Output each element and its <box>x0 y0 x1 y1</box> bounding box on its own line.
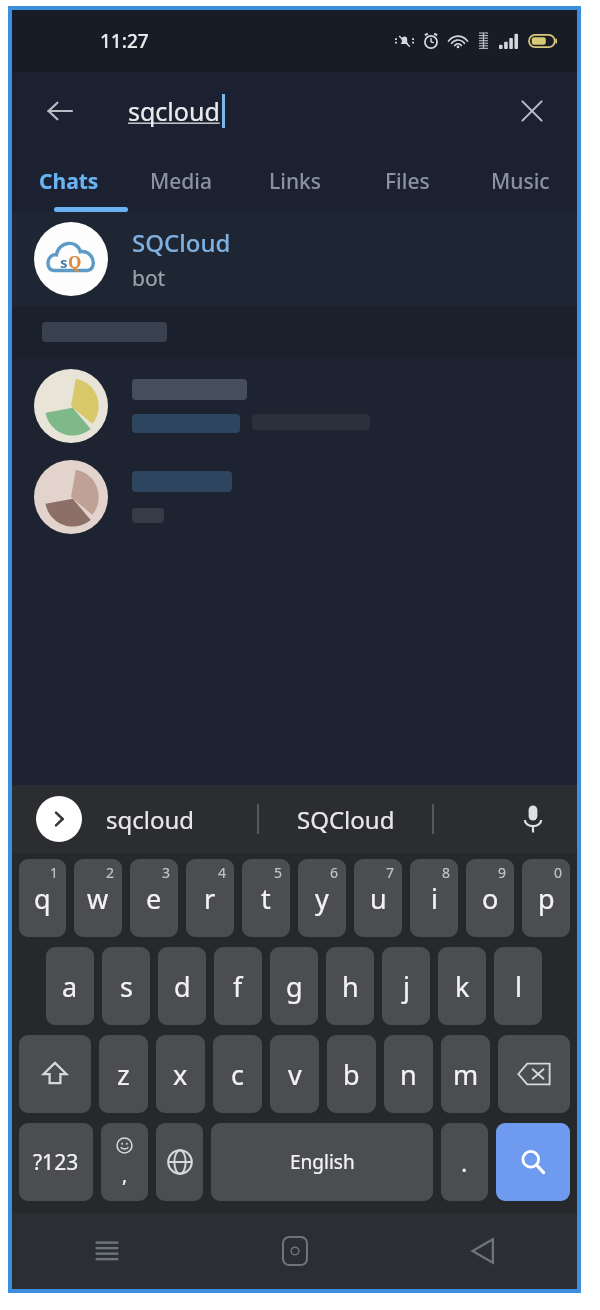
button[interactable]: b <box>327 1035 376 1113</box>
button[interactable]: t <box>242 859 290 937</box>
button[interactable]: i <box>410 859 458 937</box>
staticText: SQCloud <box>297 803 395 836</box>
staticText: , <box>122 1161 128 1188</box>
button[interactable]: l <box>494 947 542 1025</box>
staticText: n <box>400 1056 417 1093</box>
button[interactable]: j <box>382 947 430 1025</box>
button[interactable]: f <box>214 947 262 1025</box>
button[interactable]: Voice input <box>509 795 557 843</box>
staticText: 4 <box>218 863 227 882</box>
staticText: k <box>455 968 470 1005</box>
staticText: b <box>343 1056 360 1093</box>
button[interactable]: Change language <box>156 1123 203 1201</box>
staticText: Links <box>269 167 321 196</box>
staticText: s <box>60 252 68 272</box>
staticText: e <box>146 880 162 917</box>
button[interactable]: o <box>466 859 514 937</box>
staticText: 6 <box>330 863 339 882</box>
staticText: r <box>204 880 216 917</box>
staticText: 8 <box>442 863 451 882</box>
staticText: sqcloud <box>106 803 195 836</box>
staticText: m <box>453 1056 479 1093</box>
button[interactable]: English <box>211 1123 433 1201</box>
button[interactable]: Back <box>32 83 88 139</box>
staticText: l <box>515 968 522 1005</box>
button[interactable]: Music <box>464 150 577 212</box>
button[interactable]: v <box>270 1035 319 1113</box>
staticText: z <box>117 1056 130 1093</box>
button[interactable]: sqcloud <box>106 803 257 836</box>
staticText: 9 <box>498 863 507 882</box>
button[interactable]: y <box>298 859 346 937</box>
button[interactable]: s <box>102 947 150 1025</box>
button[interactable]: Recent apps <box>12 1213 201 1289</box>
button[interactable]: c <box>213 1035 262 1113</box>
staticText: 5 <box>274 863 283 882</box>
button[interactable]: Home <box>201 1213 389 1289</box>
staticText: sqcloud <box>128 94 220 128</box>
button[interactable]: Media <box>125 150 238 212</box>
button[interactable] <box>12 453 577 541</box>
button[interactable]: a <box>46 947 94 1025</box>
staticText: p <box>538 880 555 917</box>
button[interactable]: d <box>158 947 206 1025</box>
staticText: 3 <box>162 863 171 882</box>
staticText: c <box>231 1056 244 1093</box>
button[interactable]: n <box>384 1035 433 1113</box>
staticText: 1 <box>50 863 59 882</box>
button[interactable]: x <box>156 1035 205 1113</box>
button[interactable]: h <box>326 947 374 1025</box>
button[interactable]: Emoji and comma <box>101 1123 148 1201</box>
button[interactable]: p <box>522 859 570 937</box>
staticText: Q <box>68 250 82 273</box>
button[interactable]: g <box>270 947 318 1025</box>
button[interactable]: Shift <box>19 1035 91 1113</box>
staticText: Files <box>385 167 430 196</box>
staticText: Music <box>491 167 550 196</box>
button[interactable]: z <box>99 1035 148 1113</box>
staticText: y <box>315 880 329 917</box>
button[interactable]: e <box>130 859 178 937</box>
staticText: Media <box>150 167 213 196</box>
staticText: ?123 <box>33 1148 79 1177</box>
button[interactable]: Search <box>496 1123 570 1201</box>
button[interactable]: Chats <box>12 150 125 212</box>
button[interactable]: Expand suggestions <box>36 796 82 842</box>
staticText: bot <box>132 264 166 293</box>
button[interactable]: ?123 <box>19 1123 93 1201</box>
staticText: f <box>233 968 243 1005</box>
button[interactable]: q <box>19 859 66 937</box>
button[interactable]: u <box>354 859 402 937</box>
staticText: t <box>261 880 271 917</box>
staticText: g <box>286 968 303 1005</box>
button[interactable]: Clear search <box>505 84 559 138</box>
button[interactable] <box>12 358 577 453</box>
staticText: SQCloud <box>132 226 231 259</box>
button[interactable]: r <box>186 859 234 937</box>
button[interactable]: w <box>74 859 122 937</box>
button[interactable]: Backspace <box>498 1035 570 1113</box>
staticText: 2 <box>106 863 115 882</box>
staticText: Chats <box>39 167 99 196</box>
staticText: 11:27 <box>100 28 149 54</box>
staticText: v <box>288 1056 302 1093</box>
staticText: 7 <box>386 863 395 882</box>
button[interactable]: k <box>438 947 486 1025</box>
staticText: q <box>34 880 51 917</box>
button[interactable]: Files <box>351 150 464 212</box>
button[interactable]: m <box>441 1035 490 1113</box>
staticText: o <box>482 880 499 917</box>
button[interactable]: s <box>12 212 577 306</box>
staticText: h <box>342 968 359 1005</box>
staticText: English <box>290 1149 355 1175</box>
staticText: u <box>370 880 387 917</box>
button[interactable]: Links <box>238 150 351 212</box>
staticText: s <box>120 968 133 1005</box>
button[interactable]: . <box>441 1123 488 1201</box>
staticText: 0 <box>554 863 563 882</box>
staticText: i <box>431 880 438 917</box>
button[interactable]: Back <box>389 1213 577 1289</box>
staticText: w <box>87 880 109 917</box>
button[interactable]: SQCloud <box>259 803 432 836</box>
staticText: d <box>174 968 191 1005</box>
